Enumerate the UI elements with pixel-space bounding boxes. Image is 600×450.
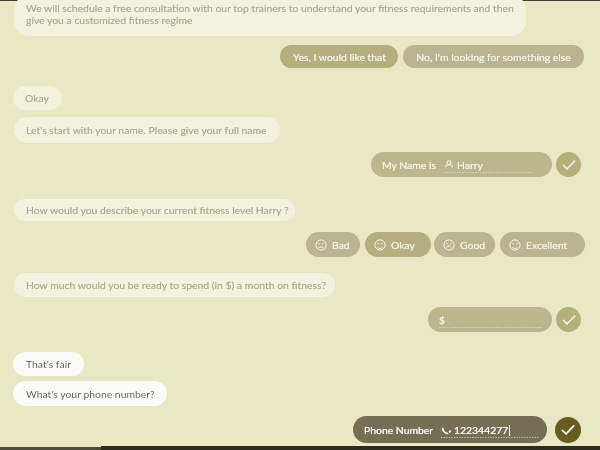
staticText: Bad bbox=[332, 239, 350, 251]
button[interactable]: Let's start with your name. Please give … bbox=[14, 117, 280, 143]
staticText: Let's start with your name. Please give … bbox=[26, 124, 267, 136]
button[interactable]: Submit bbox=[555, 417, 581, 443]
button[interactable]: Excellent bbox=[500, 232, 585, 257]
button[interactable]: How would you describe your current fitn… bbox=[14, 199, 295, 221]
staticText: Harry bbox=[457, 159, 483, 171]
button[interactable]: Submit bbox=[556, 152, 581, 177]
button[interactable]: We will schedule a free consultation wit… bbox=[14, 0, 526, 36]
staticText: Okay bbox=[25, 92, 49, 104]
button[interactable]: No, I'm looking for something else bbox=[403, 45, 584, 68]
button[interactable]: Yes, I would like that bbox=[280, 45, 398, 68]
staticText: Excellent bbox=[526, 239, 568, 251]
staticText: $ bbox=[439, 314, 446, 326]
button[interactable]: Submit bbox=[556, 307, 581, 332]
staticText: 122344277 bbox=[454, 424, 509, 436]
button[interactable]: Okay bbox=[365, 232, 431, 257]
staticText: Okay bbox=[391, 239, 415, 251]
button[interactable]: Bad bbox=[306, 232, 360, 257]
staticText: No, I'm looking for something else bbox=[416, 51, 571, 63]
staticText: Yes, I would like that bbox=[293, 51, 386, 63]
button[interactable]: My Name is bbox=[371, 152, 552, 177]
staticText: We will schedule a free consultation wit… bbox=[26, 2, 514, 26]
staticText: Good bbox=[460, 239, 486, 251]
button[interactable]: What's your phone number? bbox=[13, 381, 167, 406]
button[interactable]: That's fair bbox=[13, 352, 84, 376]
staticText: How much would you be ready to spend (in… bbox=[26, 279, 327, 291]
staticText: Phone Number bbox=[364, 424, 434, 436]
staticText: My Name is bbox=[382, 159, 436, 171]
button[interactable]: Okay bbox=[13, 86, 62, 110]
button[interactable]: Phone Number bbox=[353, 416, 547, 443]
button[interactable]: How much would you be ready to spend (in… bbox=[14, 273, 335, 297]
staticText: What's your phone number? bbox=[26, 388, 155, 400]
button[interactable]: Good bbox=[434, 232, 495, 257]
staticText: That's fair bbox=[26, 358, 71, 370]
button[interactable]: $ bbox=[428, 307, 552, 332]
staticText: How would you describe your current fitn… bbox=[26, 204, 289, 216]
